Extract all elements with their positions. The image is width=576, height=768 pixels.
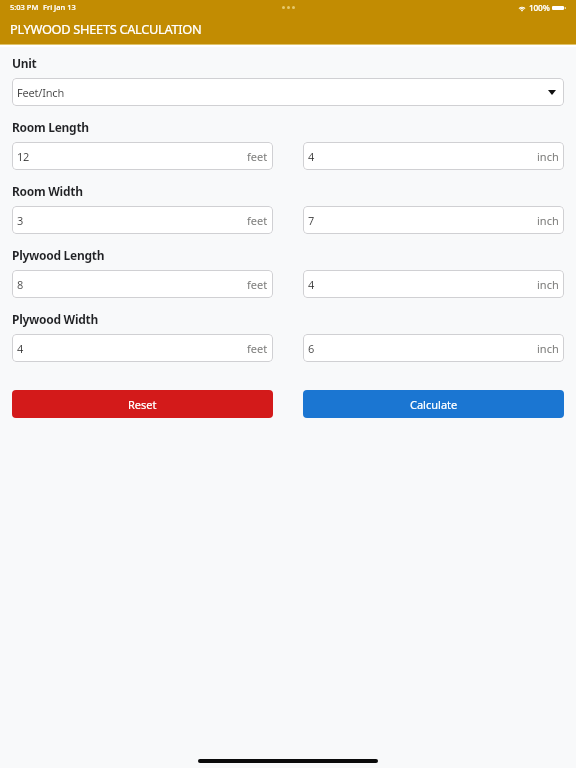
staticText: 6 — [308, 341, 315, 356]
staticText: inch — [537, 213, 559, 228]
button[interactable]: 3 — [12, 206, 273, 234]
staticText: 100% — [529, 2, 550, 13]
staticText: inch — [537, 341, 559, 356]
staticText: feet — [247, 213, 268, 228]
staticText: 5:03 PM — [10, 2, 39, 12]
staticText: Unit — [12, 55, 37, 71]
staticText: Fri Jan 13 — [43, 2, 76, 12]
staticText: Reset — [128, 397, 157, 412]
staticText: 12 — [17, 149, 30, 164]
staticText: Plywood Width — [12, 311, 99, 327]
button[interactable]: Reset — [12, 390, 273, 418]
staticText: feet — [247, 149, 268, 164]
staticText: 3 — [17, 213, 24, 228]
staticText: Room Length — [12, 119, 89, 135]
button[interactable]: 4 — [12, 334, 273, 362]
staticText: feet — [247, 341, 268, 356]
staticText: Feet/Inch — [17, 85, 64, 100]
staticText: Calculate — [410, 397, 458, 412]
staticText: inch — [537, 277, 559, 292]
staticText: Room Width — [12, 183, 83, 199]
button[interactable]: 6 — [303, 334, 564, 362]
button[interactable]: Unit: Feet/Inch, open dropdown — [12, 78, 564, 106]
staticText: 8 — [17, 277, 24, 292]
staticText: 4 — [308, 149, 315, 164]
staticText: 7 — [308, 213, 315, 228]
staticText: PLYWOOD SHEETS CALCULATION — [10, 20, 202, 37]
staticText: Plywood Length — [12, 247, 105, 263]
button[interactable]: 7 — [303, 206, 564, 234]
button[interactable]: 4 — [303, 142, 564, 170]
staticText: 4 — [17, 341, 24, 356]
button[interactable]: 8 — [12, 270, 273, 298]
staticText: feet — [247, 277, 268, 292]
staticText: inch — [537, 149, 559, 164]
other: Wi-Fi — [518, 5, 526, 11]
other: Battery full — [552, 6, 566, 10]
button[interactable]: 4 — [303, 270, 564, 298]
staticText: 4 — [308, 277, 315, 292]
button[interactable]: 12 — [12, 142, 273, 170]
button[interactable]: Calculate — [303, 390, 564, 418]
